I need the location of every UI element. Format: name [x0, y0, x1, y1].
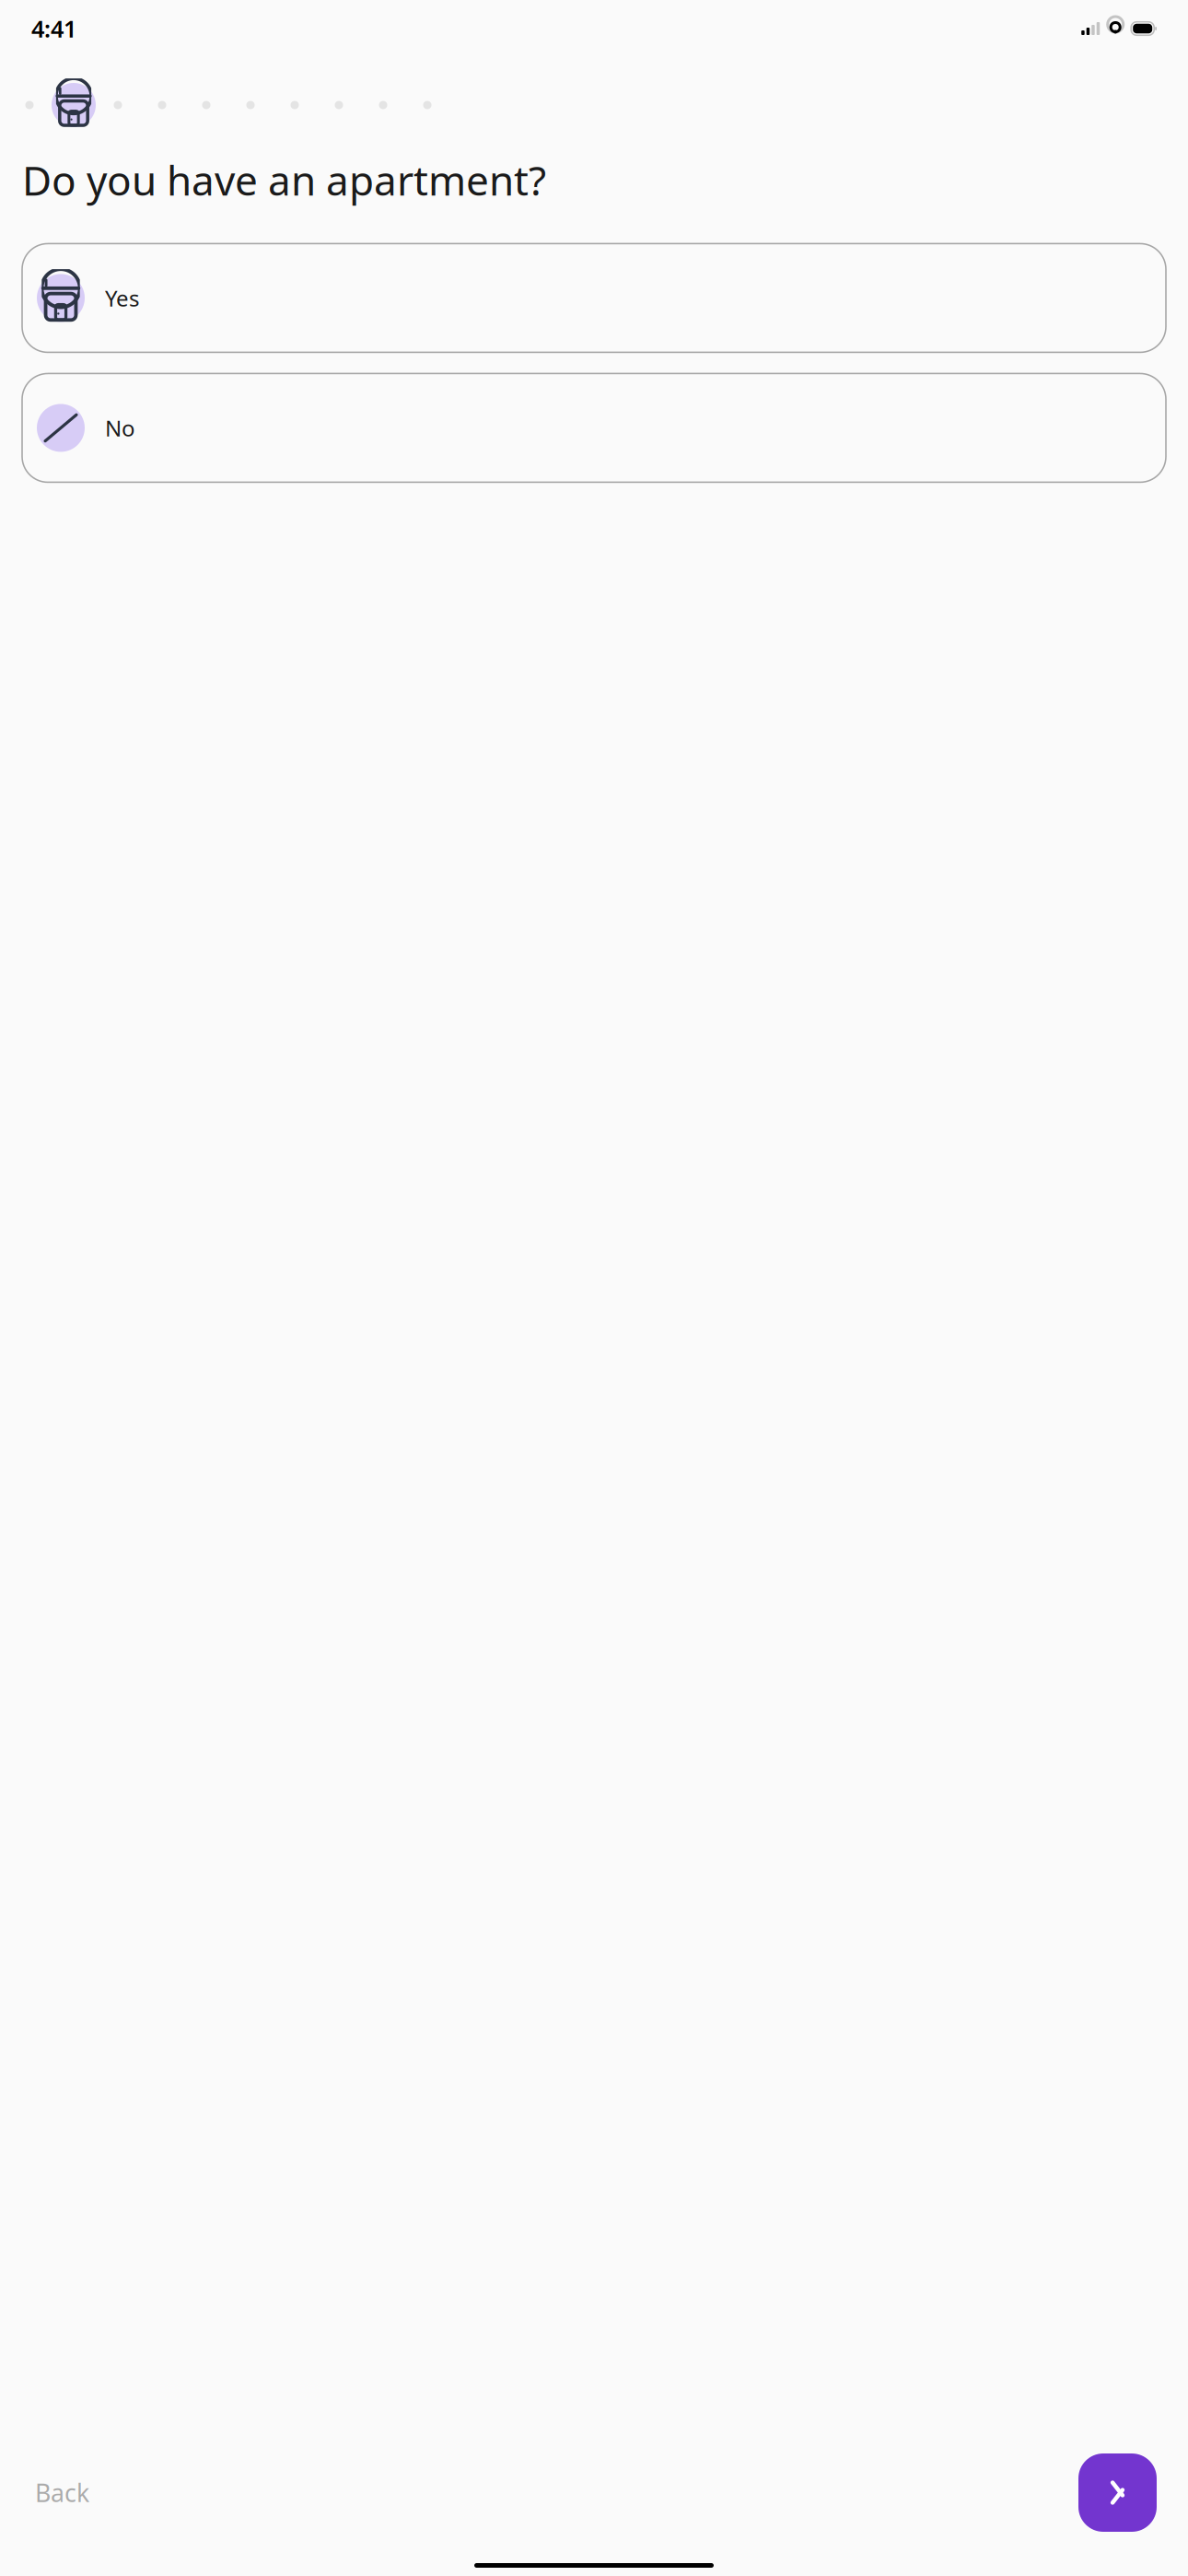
button[interactable]: No — [22, 374, 1166, 482]
staticText: Yes — [105, 283, 139, 313]
button[interactable]: Back — [31, 2463, 93, 2522]
staticText: Do you have an apartment? — [22, 153, 546, 207]
button[interactable]: Yes — [22, 244, 1166, 352]
staticText: 4:41 — [31, 13, 76, 44]
staticText: No — [105, 413, 135, 443]
staticText: Back — [35, 2476, 89, 2509]
button[interactable]: Next — [1078, 2453, 1157, 2532]
